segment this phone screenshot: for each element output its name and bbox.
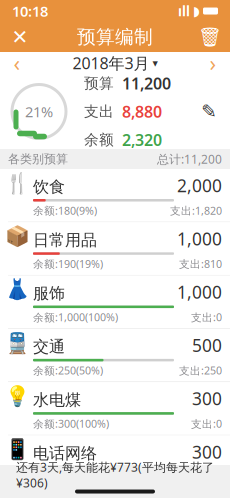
button[interactable]: 下一月	[196, 52, 230, 74]
staticText: 1,000	[177, 281, 222, 304]
button[interactable]: 📱	[0, 435, 230, 489]
staticText: 500	[192, 334, 222, 357]
button[interactable]: 👗	[0, 276, 230, 329]
staticText: 支出	[84, 102, 114, 120]
staticText: 1,000	[177, 227, 222, 250]
staticText: 300	[192, 387, 222, 410]
staticText: 21%	[25, 102, 53, 121]
staticText: 总计:11,200	[157, 151, 222, 167]
staticText: 余额:250(50%)	[33, 363, 103, 378]
staticText: 2,320	[122, 129, 162, 150]
button[interactable]: 💡	[0, 382, 230, 435]
button[interactable]: 📦	[0, 222, 230, 276]
staticText: 日常用品	[33, 230, 97, 250]
staticText: 余额	[84, 131, 114, 149]
staticText: 支出:810	[179, 257, 222, 271]
staticText: 余额:300(100%)	[33, 417, 109, 431]
button[interactable]: 上一月	[0, 52, 34, 74]
staticText: 💡	[4, 385, 29, 408]
staticText: 支出:0	[191, 470, 222, 484]
staticText: 余额:190(19%)	[33, 257, 103, 271]
staticText: 支出:1,820	[170, 203, 222, 218]
staticText: 预算	[84, 74, 114, 92]
button[interactable]: 关闭	[0, 22, 40, 52]
staticText: ıll	[178, 2, 190, 20]
button[interactable]: 🍴	[0, 169, 230, 222]
staticText: 11,200	[122, 73, 171, 94]
staticText: 2,000	[177, 174, 222, 197]
staticText: 余额:1,000(100%)	[33, 310, 118, 324]
staticText: 支出:250	[179, 363, 222, 378]
staticText: ✕	[11, 26, 28, 48]
button[interactable]: 🏠	[0, 489, 230, 498]
staticText: 📦	[4, 225, 29, 248]
staticText: 交通	[33, 337, 65, 357]
staticText: 🚆	[4, 331, 29, 354]
staticText: 300	[192, 440, 222, 463]
staticText: 预算编制	[77, 25, 153, 48]
staticText: 🍴	[4, 172, 29, 194]
staticText: 余额:180(9%)	[33, 203, 97, 218]
staticText: 8,880	[122, 101, 162, 122]
staticText: 余额:300(100%)	[33, 470, 109, 484]
staticText: 支出:0	[191, 417, 222, 431]
staticText: 水电煤	[33, 390, 81, 410]
button[interactable]: 删除	[190, 22, 230, 52]
staticText: ‹	[13, 49, 20, 77]
staticText: ◗	[193, 3, 200, 18]
staticText: 电话网络	[33, 443, 97, 463]
staticText: 支出:0	[191, 310, 222, 324]
staticText: 各类别预算	[8, 152, 68, 166]
staticText: 📱	[4, 438, 29, 461]
staticText: 2018年3月	[72, 52, 149, 74]
staticText: ›	[209, 49, 216, 77]
staticText: ▾	[152, 57, 157, 69]
staticText: 饮食	[33, 177, 65, 197]
staticText: 还有3天,每天能花¥773(平均每天花了¥306)	[16, 459, 214, 491]
staticText: 🗑	[198, 26, 222, 48]
button[interactable]: 🚆	[0, 329, 230, 382]
button[interactable]: 编辑预算	[194, 96, 224, 126]
staticText: 服饰	[33, 284, 65, 303]
staticText: ✎	[201, 101, 217, 122]
staticText: 👗	[4, 278, 29, 301]
staticText: 10:18	[12, 1, 48, 21]
button[interactable]: 2018年3月	[72, 52, 157, 74]
